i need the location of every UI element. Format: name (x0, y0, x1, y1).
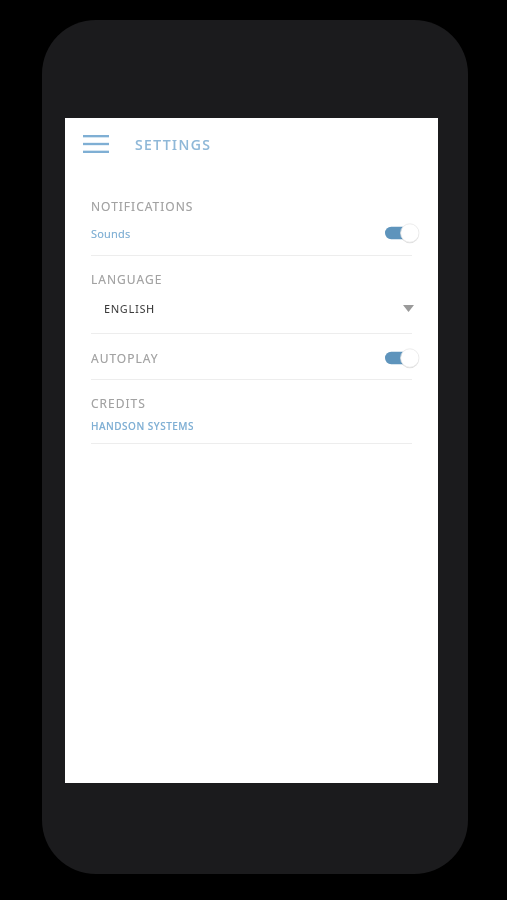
button[interactable]: HANDSON SYSTEMS (65, 415, 438, 437)
button[interactable]: ENGLISH (65, 291, 438, 325)
staticText: HANDSON SYSTEMS (91, 419, 195, 433)
button[interactable]: Open navigation menu (78, 126, 114, 162)
button[interactable]: Toggle on (385, 223, 419, 243)
staticText: Sounds (91, 226, 131, 241)
button[interactable]: AUTOPLAY (65, 346, 438, 370)
button[interactable]: Sounds (65, 218, 438, 248)
staticText: SETTINGS (135, 135, 212, 154)
staticText: AUTOPLAY (91, 350, 159, 366)
staticText: LANGUAGE (91, 271, 163, 287)
staticText: CREDITS (91, 395, 146, 411)
button[interactable]: Toggle on (385, 348, 419, 368)
staticText: ENGLISH (104, 301, 155, 316)
staticText: NOTIFICATIONS (91, 198, 194, 214)
